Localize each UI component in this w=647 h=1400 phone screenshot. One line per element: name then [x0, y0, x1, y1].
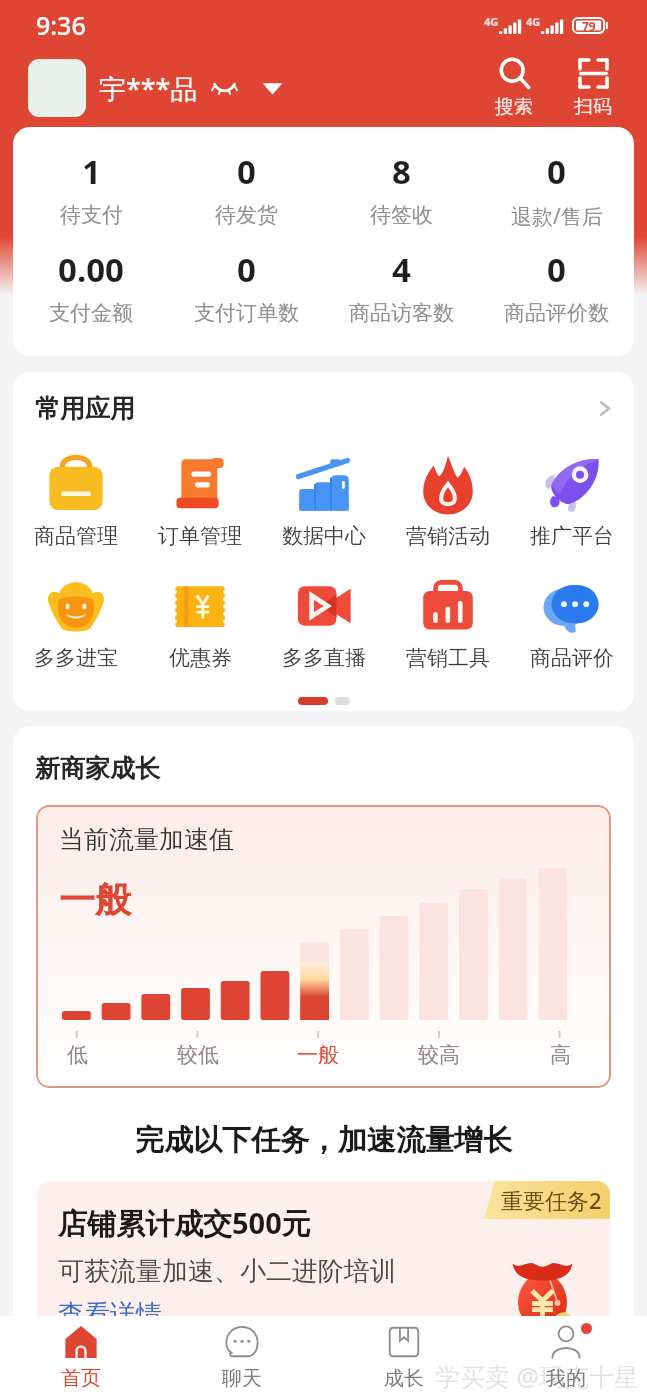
staticText: 重要任务2 [501, 1185, 602, 1215]
staticText: 较高 [418, 1042, 460, 1068]
button[interactable]: 我的 [485, 1316, 647, 1400]
button[interactable]: 店铺累计成交500元 [37, 1181, 610, 1331]
button[interactable]: 搜索 [493, 57, 535, 119]
button[interactable]: 0 [169, 247, 324, 326]
button[interactable]: 1 [13, 149, 169, 228]
staticText: 新商家成长 [35, 753, 160, 784]
staticText: 首页 [61, 1366, 101, 1391]
button[interactable]: 推广平台 [510, 453, 634, 549]
staticText: 查看详情 [58, 1298, 162, 1331]
button[interactable]: 数据中心 [262, 453, 386, 549]
button[interactable]: 扫码 [572, 57, 614, 119]
staticText: 商品评价数 [504, 300, 609, 326]
staticText: 可获流量加速、小二进阶培训 [58, 1255, 396, 1288]
staticText: 1 [82, 149, 101, 194]
button[interactable]: 首页 [0, 1316, 161, 1400]
staticText: 0 [547, 149, 566, 194]
staticText: 订单管理 [158, 523, 242, 549]
button[interactable]: 订单管理 [138, 453, 262, 549]
staticText: 0 [237, 247, 256, 292]
staticText: 多多直播 [282, 645, 366, 671]
staticText: 0 [547, 247, 566, 292]
button[interactable]: 营销工具 [386, 575, 510, 671]
staticText: 支付金额 [49, 300, 133, 326]
staticText: 我的 [546, 1366, 586, 1391]
staticText: 待签收 [370, 202, 433, 228]
button[interactable]: Shop avatar [28, 59, 86, 117]
staticText: 搜索 [495, 95, 533, 119]
staticText: 当前流量加速值 [59, 824, 234, 855]
button[interactable]: 4 [324, 247, 479, 326]
button[interactable]: More apps [596, 400, 613, 417]
button[interactable]: 商品管理 [13, 453, 138, 549]
staticText: 8 [392, 149, 411, 194]
staticText: 多多进宝 [34, 645, 118, 671]
staticText: 一般 [297, 1042, 339, 1068]
staticText: 常用应用 [35, 393, 135, 424]
button[interactable]: 优惠券 [138, 575, 262, 671]
staticText: 完成以下任务，加速流量增长 [13, 1122, 634, 1159]
staticText: 聊天 [222, 1366, 262, 1391]
staticText: 宇***品 [99, 70, 198, 107]
staticText: 0.00 [58, 247, 124, 292]
staticText: 支付订单数 [194, 300, 299, 326]
button[interactable]: 商品评价 [510, 575, 634, 671]
button[interactable]: 0.00 [13, 247, 169, 326]
staticText: 营销工具 [406, 645, 490, 671]
staticText: 成长 [384, 1366, 424, 1391]
staticText: 商品访客数 [349, 300, 454, 326]
button[interactable]: 0 [169, 149, 324, 228]
button[interactable]: 8 [324, 149, 479, 228]
staticText: 0 [237, 149, 256, 194]
staticText: 退款/售后 [511, 202, 603, 231]
staticText: 4G [526, 14, 541, 29]
staticText: 9:36 [36, 8, 86, 42]
staticText: 扫码 [574, 95, 612, 119]
staticText: 待支付 [60, 202, 123, 228]
staticText: 商品管理 [34, 523, 118, 549]
staticText: 一般 [59, 877, 131, 922]
staticText: 数据中心 [282, 523, 366, 549]
staticText: 营销活动 [406, 523, 490, 549]
button[interactable]: 成长 [323, 1316, 485, 1400]
staticText: 优惠券 [169, 645, 232, 671]
button[interactable]: Hide shop name [212, 82, 237, 94]
staticText: 4G [484, 14, 499, 29]
staticText: 高 [550, 1042, 571, 1068]
button[interactable]: 0 [479, 149, 634, 231]
button[interactable]: 多多直播 [262, 575, 386, 671]
button[interactable]: Switch shop [262, 82, 283, 95]
button[interactable]: 聊天 [161, 1316, 323, 1400]
staticText: 商品评价 [530, 645, 614, 671]
staticText: 推广平台 [530, 523, 614, 549]
button[interactable]: 营销活动 [386, 453, 510, 549]
staticText: 79 [582, 18, 596, 34]
staticText: 待发货 [215, 202, 278, 228]
staticText: 4 [392, 247, 411, 292]
button[interactable]: 多多进宝 [13, 575, 138, 671]
staticText: 店铺累计成交500元 [58, 1203, 311, 1243]
staticText: 较低 [177, 1042, 219, 1068]
staticText: 低 [67, 1042, 88, 1068]
button[interactable]: 0 [479, 247, 634, 326]
staticText: 学买卖 @玛克十星 [435, 1359, 639, 1393]
